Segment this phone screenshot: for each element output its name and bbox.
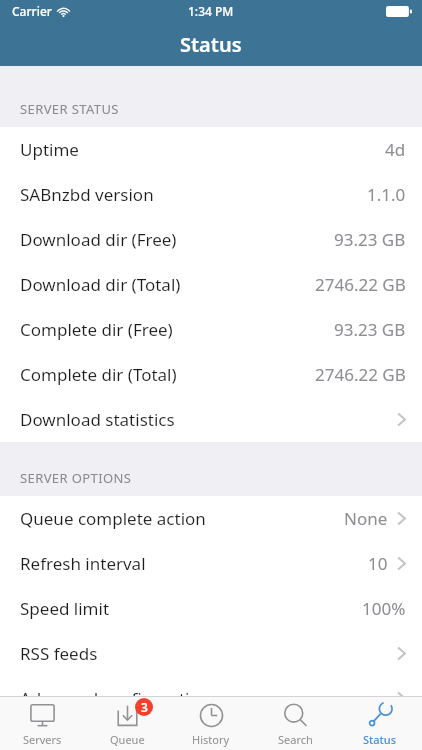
button[interactable]: History [169,697,253,750]
staticText: Complete dir (Total) [20,363,177,386]
button[interactable]: SABnzbd version [0,172,422,217]
button[interactable]: Search [253,697,337,750]
staticText: 4d [385,138,406,161]
button[interactable]: Servers [0,697,84,750]
staticText: Servers [23,732,62,747]
button[interactable]: Complete dir (Total) [0,352,422,397]
staticText: Carrier [12,3,52,19]
staticText: Speed limit [20,597,110,620]
button[interactable]: Download statistics [0,397,422,442]
staticText: SERVER OPTIONS [20,469,132,487]
staticText: 93.23 GB [334,228,406,251]
staticText: 2746.22 GB [315,363,406,386]
staticText: 1.1.0 [367,183,406,206]
staticText: Complete dir (Free) [20,318,173,341]
staticText: None [344,507,388,530]
button[interactable]: Queue complete action [0,496,422,541]
staticText: Uptime [20,138,79,161]
button[interactable]: Download dir (Free) [0,217,422,262]
staticText: Queue complete action [20,507,206,530]
button[interactable]: Download dir (Total) [0,262,422,307]
button[interactable]: RSS feeds [0,631,422,676]
button[interactable]: Uptime [0,127,422,172]
staticText: SABnzbd version [20,183,154,206]
staticText: Download statistics [20,408,175,431]
staticText: 2746.22 GB [315,273,406,296]
staticText: Queue [110,732,145,747]
staticText: 93.23 GB [334,318,406,341]
button[interactable]: Status [338,697,422,750]
staticText: RSS feeds [20,642,98,665]
staticText: Search [278,732,313,747]
button[interactable]: Refresh interval [0,541,422,586]
staticText: 3 [141,699,148,715]
staticText: Download dir (Free) [20,228,177,251]
staticText: 10 [368,552,388,575]
staticText: Advanced configuration [20,687,211,710]
staticText: SERVER STATUS [20,100,119,118]
button[interactable]: Complete dir (Free) [0,307,422,352]
staticText: History [192,732,230,747]
staticText: Status [180,31,242,58]
staticText: Download dir (Total) [20,273,181,296]
button[interactable]: Advanced configuration [0,676,422,721]
button[interactable]: Queue [85,697,169,750]
staticText: Refresh interval [20,552,146,575]
staticText: Status [363,732,397,747]
staticText: 1:34 PM [188,3,234,19]
button[interactable]: Speed limit [0,586,422,631]
staticText: 100% [362,597,406,620]
